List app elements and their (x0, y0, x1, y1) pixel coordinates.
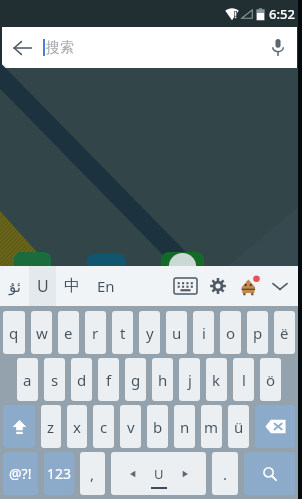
staticText: g (131, 370, 141, 390)
staticText: 中 (64, 276, 80, 296)
button[interactable]: n (174, 405, 195, 448)
button[interactable]: U (111, 452, 206, 495)
staticText: ü (234, 417, 244, 437)
button[interactable]: Settings (203, 266, 233, 306)
staticText: v (127, 417, 135, 437)
staticText: ئۇ (9, 278, 21, 295)
staticText: k (212, 370, 221, 390)
staticText: j (188, 370, 192, 390)
staticText: @?! (9, 464, 32, 483)
button[interactable]: j (179, 358, 200, 401)
button[interactable]: z (41, 405, 61, 448)
button[interactable]: ئۇ (0, 266, 29, 306)
staticText: m (204, 417, 219, 437)
button[interactable]: o (220, 311, 241, 354)
button[interactable]: w (31, 311, 52, 354)
staticText: En (97, 276, 115, 296)
button[interactable]: App (14, 252, 51, 266)
button[interactable]: d (71, 358, 92, 401)
staticText: l (242, 370, 246, 390)
staticText: 搜索 (46, 39, 74, 57)
button[interactable]: Hide keyboard (265, 266, 295, 306)
button[interactable]: . (212, 452, 238, 495)
staticText: a (23, 370, 32, 390)
staticText: n (180, 417, 190, 437)
button[interactable]: Voice search (259, 27, 297, 68)
staticText: e (64, 323, 73, 343)
staticText: U (154, 465, 164, 483)
button[interactable]: U (29, 266, 56, 306)
button[interactable]: v (120, 405, 141, 448)
button[interactable]: , (80, 452, 105, 495)
button[interactable]: l (233, 358, 254, 401)
staticText: u (172, 323, 182, 343)
button[interactable]: En (87, 266, 125, 306)
button[interactable]: 中 (56, 266, 87, 306)
staticText: c (100, 417, 108, 437)
button[interactable]: q (3, 311, 25, 354)
staticText: o (226, 323, 236, 343)
button[interactable]: p (247, 311, 268, 354)
staticText: s (51, 370, 59, 390)
staticText: b (153, 417, 163, 437)
staticText: r (92, 323, 99, 343)
staticText: i (202, 323, 206, 343)
button[interactable]: u (166, 311, 187, 354)
staticText: x (73, 417, 81, 437)
staticText: h (158, 370, 168, 390)
button[interactable]: f (98, 358, 119, 401)
button[interactable] (255, 405, 295, 448)
button[interactable]: Keyboard layout (167, 266, 203, 306)
button[interactable]: b (147, 405, 168, 448)
staticText: d (77, 370, 87, 390)
button[interactable]: r (85, 311, 106, 354)
button[interactable]: ü (228, 405, 249, 448)
button[interactable]: m (201, 405, 222, 448)
staticText: z (47, 417, 55, 437)
button[interactable] (244, 452, 295, 495)
staticText: y (146, 323, 154, 343)
button[interactable]: k (206, 358, 227, 401)
staticText: ö (266, 370, 276, 390)
button[interactable]: i (193, 311, 214, 354)
button[interactable] (3, 405, 35, 448)
button[interactable]: t (112, 311, 133, 354)
button[interactable]: ö (260, 358, 281, 401)
button[interactable]: App (161, 252, 204, 266)
staticText: 123 (47, 464, 72, 483)
staticText: w (36, 323, 48, 343)
staticText: 6:52 (269, 5, 295, 23)
button[interactable]: y (139, 311, 160, 354)
button[interactable]: a (17, 358, 38, 401)
staticText: U (37, 275, 49, 297)
button[interactable]: g (125, 358, 146, 401)
button[interactable]: Back (2, 27, 43, 68)
button[interactable]: ë (274, 311, 295, 354)
button[interactable]: h (152, 358, 173, 401)
button[interactable]: 123 (44, 452, 74, 495)
staticText: t (120, 323, 126, 343)
button[interactable]: s (44, 358, 65, 401)
staticText: p (253, 323, 263, 343)
staticText: ë (280, 323, 289, 343)
staticText: q (9, 323, 19, 343)
button[interactable]: Stickers (233, 266, 265, 306)
staticText: f (106, 370, 112, 390)
button[interactable]: c (93, 405, 114, 448)
staticText: . (223, 464, 228, 484)
button[interactable]: @?! (3, 452, 38, 495)
button[interactable]: x (67, 405, 87, 448)
button[interactable]: App (87, 254, 126, 266)
button[interactable]: e (58, 311, 79, 354)
staticText: , (90, 464, 95, 484)
